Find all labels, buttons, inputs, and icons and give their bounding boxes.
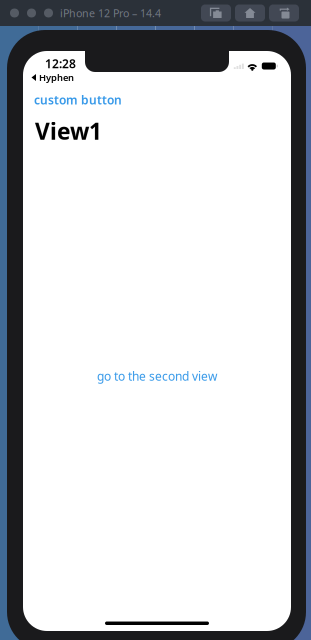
button[interactable]: Home <box>235 4 265 21</box>
button[interactable]: custom button <box>34 92 122 108</box>
staticText: 12:28 <box>45 55 76 71</box>
staticText: iPhone 12 Pro – 14.4 <box>60 6 161 20</box>
button[interactable]: go to the second view <box>97 368 217 384</box>
button[interactable]: Hyphen <box>31 71 74 84</box>
staticText: View1 <box>35 116 102 146</box>
staticText: Hyphen <box>39 71 74 84</box>
button[interactable]: Screenshot <box>201 4 231 21</box>
button[interactable]: Rotate <box>269 4 299 21</box>
staticText: custom button <box>34 92 122 108</box>
staticText: go to the second view <box>97 368 217 384</box>
